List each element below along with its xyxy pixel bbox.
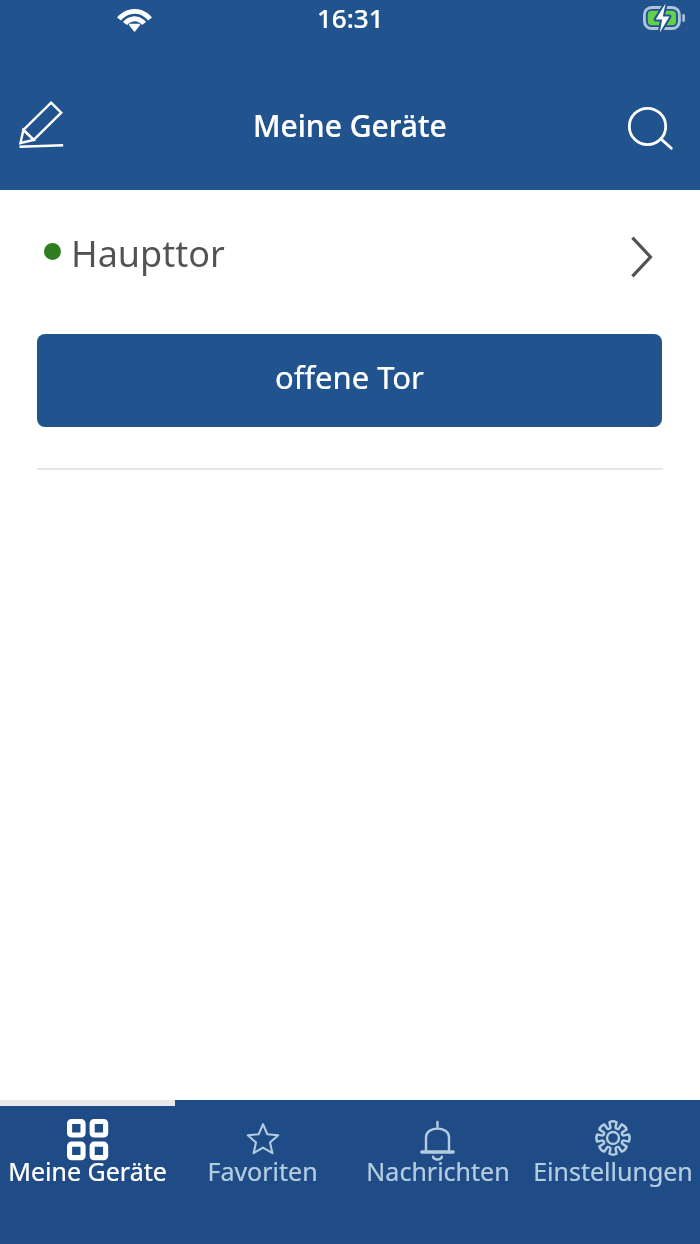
button[interactable]: Nachrichten — [350, 1100, 525, 1244]
staticText: Favoriten — [207, 1154, 318, 1188]
button[interactable]: Haupttor — [0, 190, 700, 317]
staticText: Einstellungen — [533, 1154, 693, 1188]
staticText: Haupttor — [71, 229, 225, 278]
staticText: Meine Geräte — [253, 105, 447, 146]
button[interactable]: Einstellungen — [525, 1100, 700, 1244]
button[interactable]: offene Tor — [37, 334, 662, 427]
staticText: Nachrichten — [366, 1154, 510, 1188]
button[interactable]: Favoriten — [175, 1100, 350, 1244]
button[interactable]: Search — [616, 93, 688, 165]
staticText: Meine Geräte — [8, 1154, 167, 1188]
staticText: offene Tor — [275, 356, 424, 398]
button[interactable]: Edit — [7, 89, 79, 161]
button[interactable]: Meine Geräte — [0, 1100, 175, 1244]
staticText: 16:31 — [317, 0, 384, 35]
